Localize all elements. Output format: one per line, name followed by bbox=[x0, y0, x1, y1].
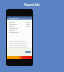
button[interactable]: App bar bbox=[7, 16, 32, 20]
button[interactable] bbox=[9, 40, 30, 42]
button[interactable] bbox=[9, 27, 30, 29]
button[interactable] bbox=[9, 46, 30, 48]
button[interactable] bbox=[9, 23, 30, 25]
button[interactable] bbox=[9, 42, 30, 44]
button[interactable]: Submit bbox=[25, 51, 31, 53]
staticText: Request Info bbox=[24, 3, 40, 7]
button[interactable]: Actions bbox=[7, 56, 32, 59]
button[interactable] bbox=[9, 21, 30, 23]
button[interactable] bbox=[9, 25, 30, 27]
button[interactable] bbox=[9, 31, 30, 33]
button[interactable] bbox=[9, 29, 30, 31]
button[interactable] bbox=[9, 44, 30, 46]
